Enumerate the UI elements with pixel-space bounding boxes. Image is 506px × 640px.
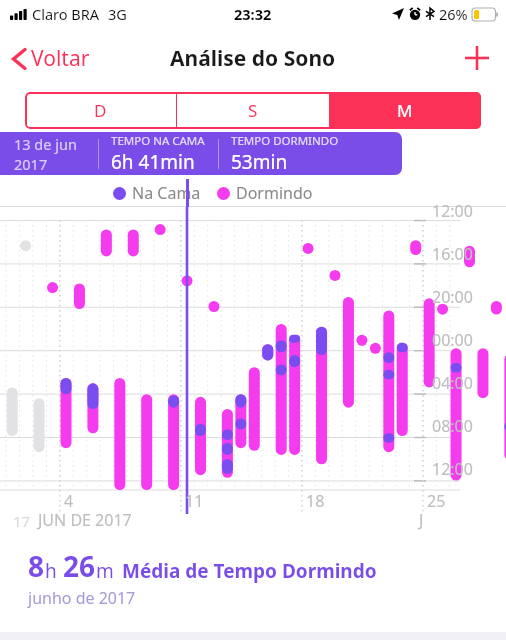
staticText: TEMPO DORMINDO: [231, 133, 339, 149]
staticText: Média de Tempo Dormindo: [122, 558, 377, 584]
button[interactable]: S: [177, 92, 329, 129]
staticText: 53min: [231, 149, 288, 175]
staticText: 6h 41min: [111, 149, 195, 175]
staticText: D: [94, 99, 107, 122]
staticText: 25: [427, 490, 446, 512]
staticText: 8: [28, 547, 45, 585]
staticText: 18: [306, 490, 325, 512]
staticText: 17: [13, 511, 31, 531]
button[interactable]: 13 de jun: [0, 132, 402, 175]
staticText: 04:00: [432, 372, 473, 394]
staticText: h: [45, 558, 57, 584]
staticText: Dormindo: [236, 182, 313, 204]
staticText: Na Cama: [132, 182, 201, 204]
staticText: junho de 2017: [28, 587, 136, 609]
button[interactable]: Voltar: [0, 36, 102, 81]
staticText: TEMPO NA CAMA: [111, 133, 205, 149]
staticText: 12:00: [432, 458, 473, 480]
staticText: 23:32: [234, 4, 272, 24]
staticText: Análise do Sono: [170, 44, 336, 73]
staticText: S: [248, 99, 258, 122]
staticText: JUN DE 2017: [38, 509, 132, 531]
staticText: J: [419, 509, 424, 531]
button[interactable]: D: [25, 92, 176, 129]
staticText: 13 de jun: [14, 134, 77, 154]
staticText: Claro BRA: [32, 4, 99, 24]
staticText: 26: [63, 547, 96, 585]
staticText: M: [397, 99, 413, 122]
button[interactable]: M: [329, 92, 481, 129]
staticText: 20:00: [432, 286, 473, 308]
staticText: 2017: [14, 154, 48, 174]
staticText: m: [96, 558, 114, 584]
staticText: 11: [185, 490, 204, 512]
staticText: 26%: [439, 4, 468, 24]
staticText: 00:00: [432, 329, 473, 351]
staticText: 4: [64, 490, 74, 512]
staticText: 12:00: [432, 200, 473, 222]
staticText: Voltar: [31, 44, 90, 73]
button[interactable]: Adicionar: [448, 35, 506, 81]
staticText: 08:00: [432, 415, 473, 437]
staticText: 16:00: [432, 243, 473, 265]
staticText: 3G: [108, 4, 127, 24]
